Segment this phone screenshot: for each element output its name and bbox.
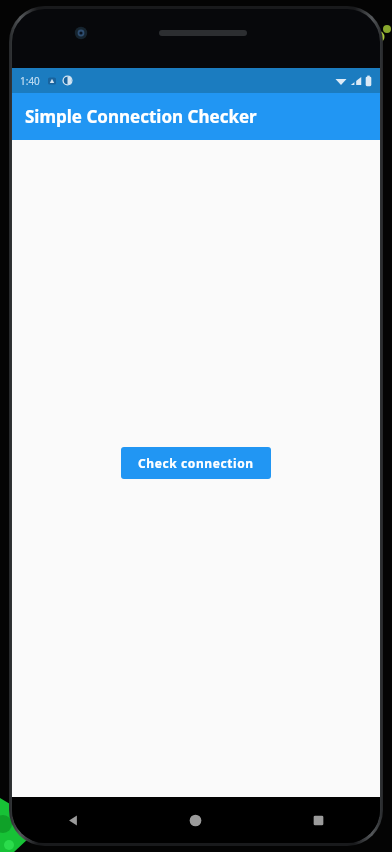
button[interactable]: Back — [12, 797, 134, 843]
button[interactable]: Recent apps — [257, 797, 380, 843]
staticText: Check connection — [138, 455, 254, 471]
button[interactable]: Home — [134, 797, 257, 843]
button[interactable]: Check connection — [121, 447, 271, 479]
staticText: Simple Connection Checker — [25, 105, 257, 128]
staticText: 1:40 — [20, 74, 40, 88]
